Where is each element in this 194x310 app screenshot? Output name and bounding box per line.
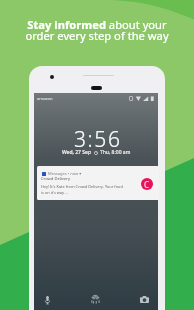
button[interactable]: Camera — [138, 293, 151, 306]
staticText: C — [144, 179, 150, 190]
staticText: Crowd Delivery — [41, 176, 70, 182]
staticText: Stay informed about your order every ste… — [0, 17, 194, 43]
staticText: Messages • now ▾ — [48, 171, 82, 176]
staticText: 3:56 — [74, 125, 122, 154]
button[interactable]: Voice assistant — [41, 293, 54, 306]
staticText: Hey! It's Kate from Crowd Delivery. Your… — [41, 184, 123, 195]
button[interactable]: Messages • now ▾ — [37, 166, 159, 200]
staticText: amazon — [37, 96, 53, 102]
staticText: Wed, 27 Sep — [62, 149, 91, 156]
button[interactable]: Fingerprint unlock — [88, 292, 103, 307]
staticText: Thu, 8:00 am — [100, 149, 131, 156]
